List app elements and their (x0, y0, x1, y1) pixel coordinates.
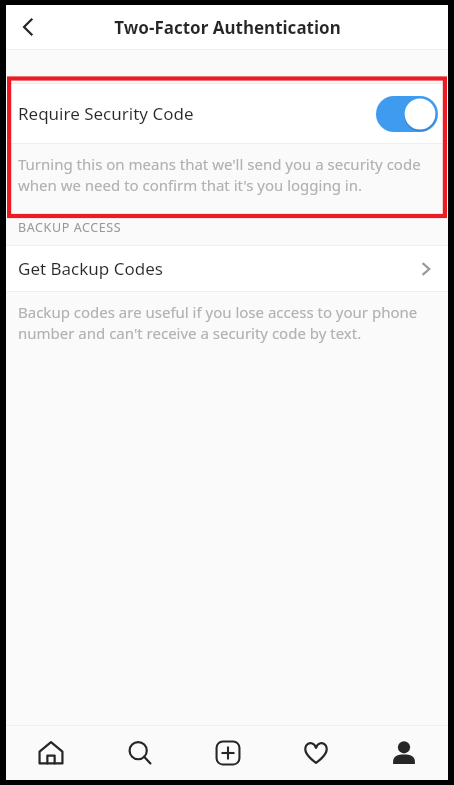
button[interactable]: Search (95, 726, 184, 780)
button[interactable]: Require Security Code toggle, on (376, 96, 438, 132)
button[interactable]: Profile (360, 726, 448, 780)
button[interactable]: Home (6, 726, 95, 780)
button[interactable]: Back (6, 5, 50, 49)
button[interactable]: Require Security Code (6, 84, 448, 143)
staticText: Turning this on means that we'll send yo… (18, 154, 438, 196)
button[interactable]: New post (184, 726, 272, 780)
staticText: Get Backup Codes (18, 257, 418, 280)
button[interactable]: Activity (272, 726, 360, 780)
button[interactable]: Get Backup Codes (6, 246, 448, 291)
staticText: Require Security Code (18, 102, 376, 125)
staticText: BACKUP ACCESS (18, 219, 122, 236)
staticText: Two-Factor Authentication (114, 16, 341, 39)
staticText: Backup codes are useful if you lose acce… (18, 302, 440, 344)
